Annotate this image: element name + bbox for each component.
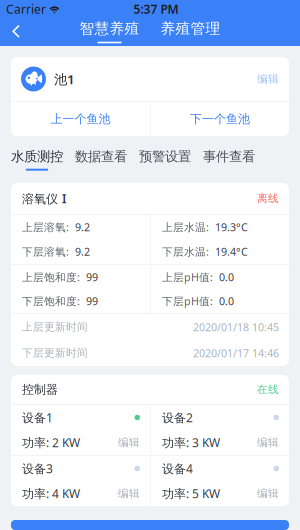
staticText: 下层饱和度: — [22, 294, 80, 308]
button[interactable] — [11, 520, 289, 530]
staticText: 池1 — [46, 70, 75, 88]
staticText: 编辑 — [118, 436, 140, 449]
staticText: 2020/01/18 10:45 — [193, 320, 279, 334]
staticText: 编辑 — [257, 487, 279, 500]
button[interactable]: 数据查看 — [75, 148, 127, 171]
button[interactable]: 编辑 — [257, 436, 279, 449]
button[interactable]: 返回 — [0, 19, 32, 44]
staticText: 上层饱和度: — [22, 270, 80, 284]
button[interactable]: 智慧养殖 — [79, 20, 139, 43]
staticText: 下层更新时间 — [22, 346, 88, 359]
staticText: 99 — [86, 294, 98, 308]
staticText: 5:37 PM — [133, 1, 178, 17]
staticText: 预警设置 — [139, 148, 191, 165]
staticText: 0.0 — [219, 270, 234, 284]
staticText: 设备2 — [162, 409, 193, 425]
button[interactable]: 编辑 — [118, 436, 140, 449]
staticText: 在线 — [257, 383, 279, 396]
staticText: 9.2 — [75, 220, 90, 234]
staticText: 19.3°C — [215, 220, 248, 234]
button[interactable]: 养殖管理 — [160, 20, 220, 43]
staticText: 上层更新时间 — [22, 320, 88, 333]
staticText: 功率: 3 KW — [162, 434, 220, 450]
staticText: 上一个鱼池 — [50, 112, 110, 126]
staticText: 上层水温: — [162, 220, 209, 234]
staticText: 0.0 — [219, 294, 234, 308]
staticText: 控制器 — [22, 382, 58, 397]
staticText: 设备3 — [22, 460, 53, 476]
staticText: 上层溶氧: — [22, 220, 69, 234]
button[interactable]: 水质测控 — [11, 148, 63, 171]
staticText: 编辑 — [118, 487, 140, 500]
staticText: 编辑 — [257, 72, 279, 85]
staticText: 事件查看 — [203, 148, 255, 165]
staticText: 智慧养殖 — [79, 20, 139, 38]
staticText: 下一个鱼池 — [190, 112, 250, 126]
button[interactable]: 下一个鱼池 — [151, 102, 289, 136]
staticText: 设备1 — [22, 409, 53, 425]
staticText: 设备4 — [162, 460, 193, 476]
staticText: 下层溶氧: — [22, 244, 69, 259]
staticText: 离线 — [257, 192, 279, 205]
staticText: 功率: 5 KW — [162, 485, 220, 501]
staticText: 19.4°C — [215, 244, 248, 259]
staticText: 99 — [86, 270, 98, 284]
staticText: 9.2 — [75, 244, 90, 259]
button[interactable]: 上一个鱼池 — [11, 102, 150, 136]
staticText: 下层水温: — [162, 244, 209, 259]
staticText: 功率: 4 KW — [22, 485, 80, 501]
staticText: Carrier — [6, 1, 46, 17]
staticText: 2020/01/17 14:46 — [193, 346, 279, 360]
button[interactable]: 编辑 — [257, 72, 279, 85]
staticText: 下层pH值: — [162, 294, 213, 308]
button[interactable]: 编辑 — [257, 487, 279, 500]
staticText: 上层pH值: — [162, 270, 213, 284]
staticText: 养殖管理 — [160, 20, 220, 38]
button[interactable]: 编辑 — [118, 487, 140, 500]
staticText: 溶氧仪 I — [22, 190, 66, 206]
staticText: 水质测控 — [11, 148, 63, 165]
staticText: 编辑 — [257, 436, 279, 449]
staticText: 功率: 2 KW — [22, 434, 80, 450]
button[interactable]: 事件查看 — [203, 148, 255, 171]
button[interactable]: 预警设置 — [139, 148, 191, 171]
staticText: 数据查看 — [75, 148, 127, 165]
